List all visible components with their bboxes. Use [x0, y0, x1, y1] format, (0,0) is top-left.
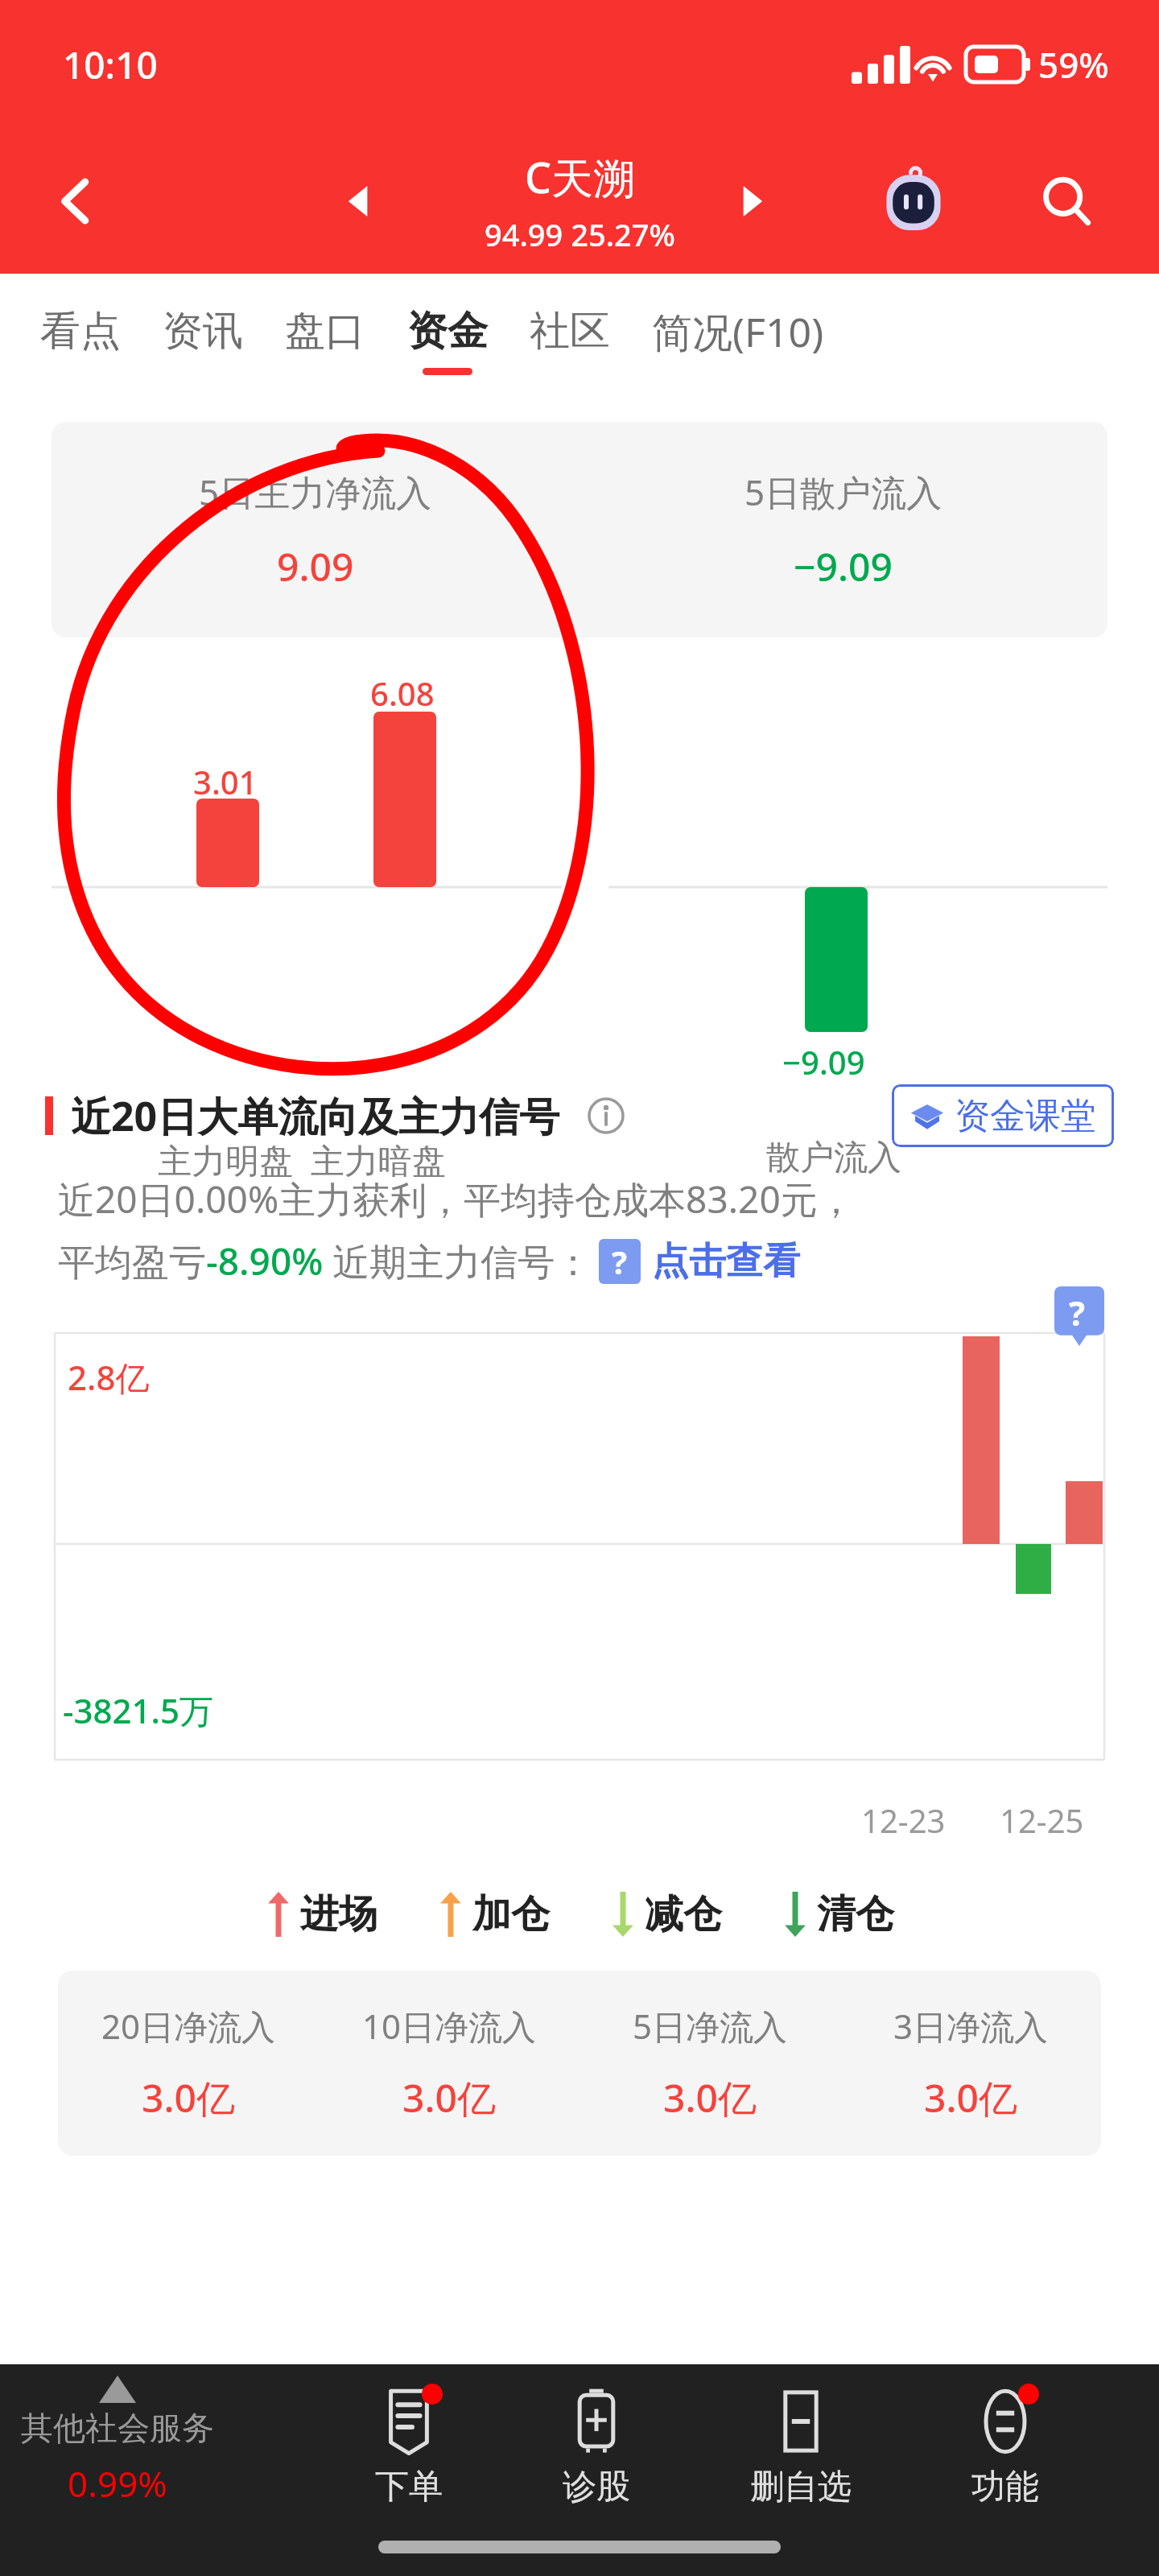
staticText: 平均盈亏-8.90% 近期主力信号：: [58, 1236, 592, 1286]
staticText: 社区: [530, 306, 610, 357]
button[interactable]: AI assistant: [869, 157, 958, 246]
staticText: C天溯: [525, 148, 636, 205]
button[interactable]: 5日主力净流入: [52, 422, 579, 638]
staticText: 近20日0.00%主力获利，平均持仓成本83.20元，: [58, 1174, 855, 1224]
staticText: 简况(F10): [652, 304, 824, 359]
staticText: 12-25: [1000, 1798, 1084, 1842]
staticText: 散户流入: [766, 1137, 901, 1179]
staticText: 0.99%: [68, 2459, 167, 2508]
staticText: 12-23: [861, 1798, 946, 1842]
button[interactable]: 看点: [40, 274, 121, 407]
button[interactable]: 点击查看: [652, 1238, 800, 1285]
staticText: 删自选: [750, 2466, 852, 2508]
button[interactable]: Back: [32, 157, 121, 246]
staticText: 清仓: [817, 1890, 894, 1938]
button[interactable]: 其他社会服务: [21, 2376, 214, 2508]
staticText: 9.09: [277, 540, 354, 592]
staticText: 点击查看: [652, 1238, 800, 1285]
button[interactable]: 5日散户流入: [579, 422, 1107, 638]
staticText: 资讯: [163, 306, 243, 357]
staticText: 3.0亿: [663, 2071, 757, 2124]
button[interactable]: C天溯: [485, 148, 675, 255]
button[interactable]: 社区: [530, 274, 610, 407]
button[interactable]: 删自选: [750, 2387, 852, 2508]
button[interactable]: 功能: [971, 2387, 1039, 2508]
staticText: 盘口: [285, 306, 365, 357]
staticText: 功能: [971, 2466, 1039, 2508]
staticText: 20日净流入: [101, 2003, 276, 2049]
button[interactable]: Info: [581, 1091, 631, 1141]
staticText: 3.01: [193, 760, 258, 803]
button[interactable]: Search: [1022, 157, 1111, 246]
button[interactable]: 清仓: [782, 1890, 894, 1938]
staticText: 10:10: [63, 39, 158, 90]
button[interactable]: Next stock: [711, 163, 789, 240]
staticText: −9.09: [794, 540, 893, 592]
staticText: 诊股: [563, 2466, 630, 2508]
staticText: 10日净流入: [362, 2003, 537, 2049]
staticText: 进场: [300, 1890, 377, 1938]
staticText: ?: [1069, 1290, 1086, 1335]
button[interactable]: 诊股: [563, 2387, 630, 2508]
staticText: 6.08: [370, 671, 435, 715]
staticText: 3.0亿: [402, 2071, 496, 2124]
staticText: ?: [612, 1240, 628, 1283]
button[interactable]: 5日净流入: [579, 1971, 840, 2156]
staticText: 资金课堂: [955, 1094, 1096, 1138]
staticText: 看点: [40, 306, 121, 357]
staticText: -3821.5万: [63, 1687, 214, 1733]
staticText: 3日净流入: [893, 2003, 1049, 2049]
staticText: 2.8亿: [68, 1354, 150, 1400]
staticText: 94.99 25.27%: [485, 213, 675, 255]
button[interactable]: 20日净流入: [58, 1971, 319, 2156]
button[interactable]: 资金课堂: [892, 1084, 1114, 1147]
staticText: −9.09: [782, 1040, 865, 1084]
staticText: 3.0亿: [924, 2071, 1017, 2124]
button[interactable]: 减仓: [609, 1890, 722, 1938]
staticText: 资金: [407, 306, 488, 357]
button[interactable]: 资讯: [163, 274, 243, 407]
button[interactable]: 加仓: [437, 1890, 550, 1938]
staticText: 下单: [375, 2466, 443, 2508]
staticText: 3.0亿: [142, 2071, 235, 2124]
staticText: 5日净流入: [633, 2003, 788, 2049]
staticText: 近20日大单流向及主力信号: [71, 1088, 560, 1143]
staticText: 5日主力净流入: [199, 468, 432, 516]
button[interactable]: 10日净流入: [319, 1971, 579, 2156]
staticText: 5日散户流入: [744, 468, 942, 516]
button[interactable]: 下单: [375, 2387, 443, 2508]
staticText: 59%: [1038, 40, 1109, 89]
button[interactable]: 资金: [407, 274, 488, 407]
button[interactable]: Previous stock: [322, 163, 399, 240]
button[interactable]: 3日净流入: [840, 1971, 1101, 2156]
button[interactable]: 盘口: [285, 274, 365, 407]
staticText: 主力明盘 主力暗盘: [158, 1137, 446, 1183]
staticText: 加仓: [472, 1890, 550, 1938]
button[interactable]: 进场: [265, 1890, 377, 1938]
staticText: 其他社会服务: [21, 2408, 214, 2448]
staticText: 减仓: [645, 1890, 722, 1938]
button[interactable]: 简况(F10): [652, 274, 824, 407]
